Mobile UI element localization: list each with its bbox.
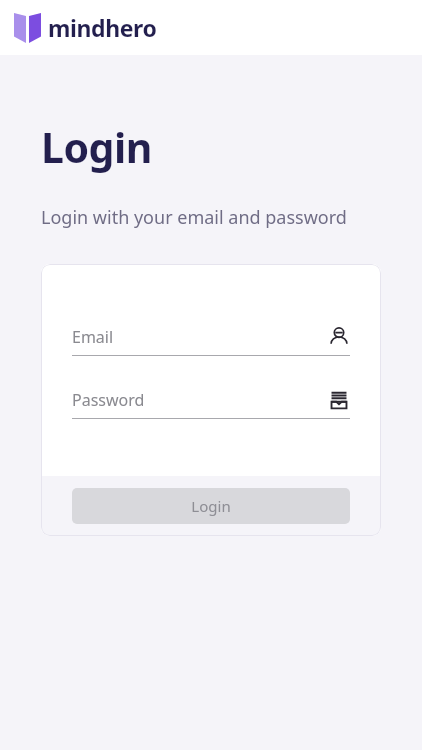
button[interactable]: mindhero xyxy=(14,12,157,43)
staticText: mindhero xyxy=(48,12,157,43)
button[interactable]: Email xyxy=(72,326,350,356)
staticText: Login xyxy=(191,496,231,516)
staticText: Login xyxy=(41,119,152,175)
staticText: Login with your email and password xyxy=(41,205,347,230)
button[interactable]: Login xyxy=(72,488,350,524)
staticText: Password xyxy=(72,389,328,411)
other: Password options xyxy=(328,389,350,411)
button[interactable]: Password xyxy=(72,389,350,419)
staticText: Email xyxy=(72,326,328,348)
other: User xyxy=(328,326,350,348)
